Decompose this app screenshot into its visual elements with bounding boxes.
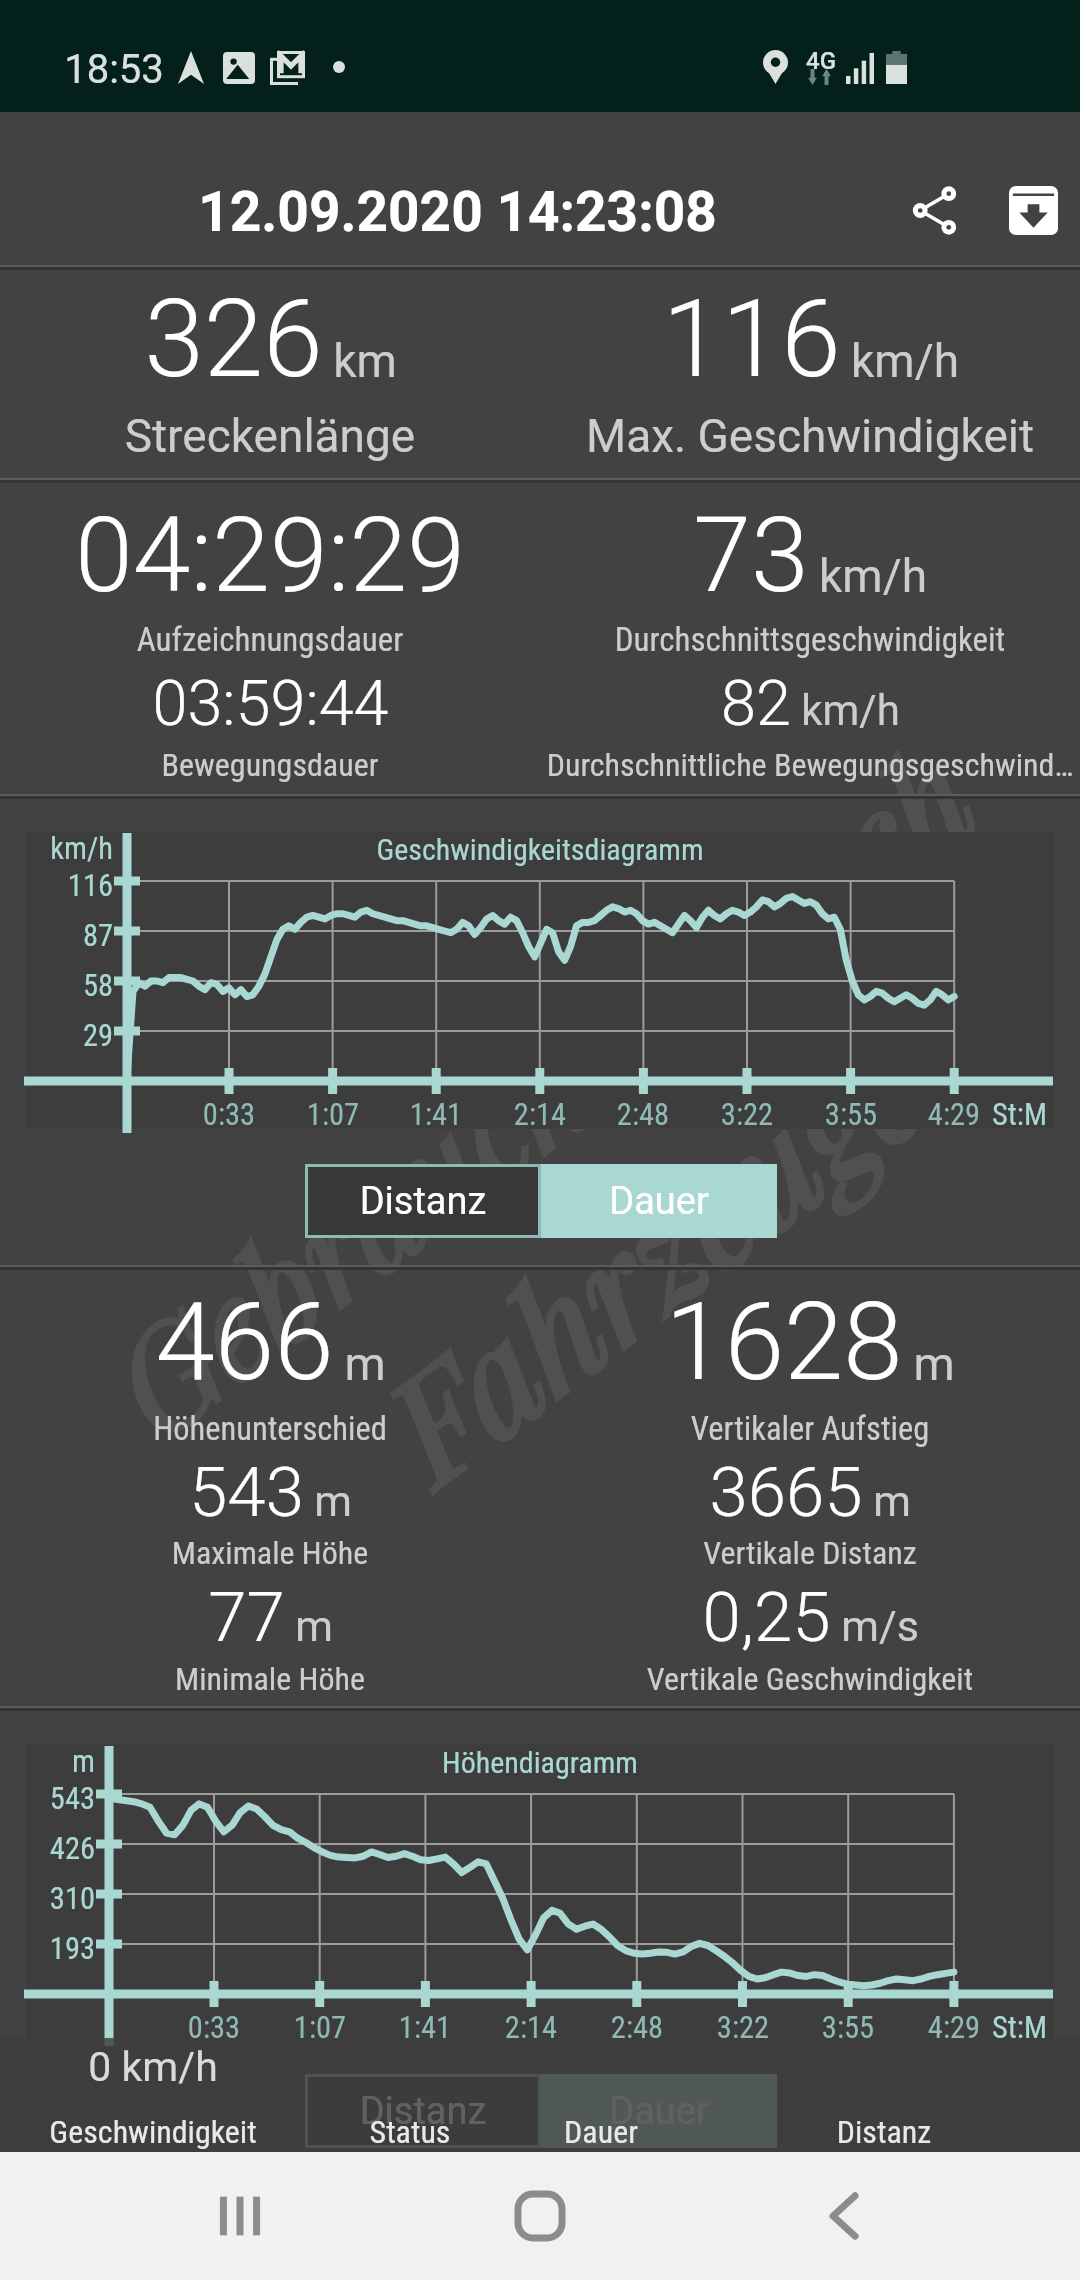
staticText: m xyxy=(295,1601,333,1651)
staticText: Dauer xyxy=(514,2113,688,2151)
staticText: 3:55 xyxy=(788,2010,908,2046)
staticText: 426 xyxy=(0,1831,95,1867)
staticText: Streckenlänge xyxy=(0,409,600,463)
button[interactable]: Herunterladen xyxy=(964,141,1080,279)
button[interactable]: Zurück xyxy=(785,2156,905,2276)
staticText: 04:29:29 xyxy=(75,495,465,617)
button[interactable]: 0 km/h xyxy=(0,2038,306,2152)
staticText: 1:07 xyxy=(273,1097,393,1133)
staticText: 58 xyxy=(0,968,113,1004)
staticText: Vertikaler Aufstieg xyxy=(480,1410,1080,1448)
staticText: 3665 xyxy=(709,1452,863,1533)
button[interactable]: 04:29:29 xyxy=(0,495,540,620)
button[interactable]: 326 xyxy=(0,277,540,405)
staticText: Geschwindigkeitsdiagramm xyxy=(26,832,1054,867)
staticText: Durchschnittliche Bewegungsgeschwind… xyxy=(480,746,1080,784)
staticText: km/h xyxy=(801,686,900,735)
staticText: 116 xyxy=(0,868,113,904)
staticText: St:M xyxy=(992,2010,1047,2046)
staticText: St:M xyxy=(992,1097,1047,1133)
button[interactable]: 116 xyxy=(540,277,1080,405)
button[interactable]: Dauer xyxy=(514,2038,688,2152)
staticText: 3:22 xyxy=(687,1097,807,1133)
staticText: 193 xyxy=(0,1931,95,1967)
button[interactable]: Status xyxy=(306,2038,514,2152)
staticText: 2:14 xyxy=(480,1097,600,1133)
staticText: 543 xyxy=(189,1452,304,1533)
staticText: km xyxy=(333,334,397,388)
staticText: 4:29 xyxy=(894,2010,1014,2046)
button[interactable]: 77 xyxy=(0,1577,540,1660)
button[interactable]: 1628 xyxy=(540,1280,1080,1408)
button[interactable]: 0,25 xyxy=(540,1577,1080,1660)
button[interactable]: Dauer xyxy=(541,1164,777,1238)
staticText: Höhendiagramm xyxy=(26,1745,1054,1780)
staticText: Distanz xyxy=(305,1179,541,1224)
staticText: Höhenunterschied xyxy=(0,1410,600,1448)
staticText: 3:55 xyxy=(791,1097,911,1133)
button[interactable]: Startbildschirm xyxy=(480,2156,600,2276)
staticText: 4G xyxy=(806,47,836,75)
staticText: 0:33 xyxy=(169,1097,289,1133)
staticText: Maximale Höhe xyxy=(0,1534,600,1572)
staticText: 73 xyxy=(693,495,809,617)
staticText: Gebrauchtdeutsche xyxy=(73,689,1027,1471)
staticText: Dauer xyxy=(541,2089,777,2134)
button[interactable]: Distanz xyxy=(305,1164,541,1238)
button[interactable]: 466 xyxy=(0,1280,540,1408)
button[interactable]: 3665 xyxy=(540,1452,1080,1535)
staticText: 0:33 xyxy=(154,2010,274,2046)
staticText: 3:22 xyxy=(683,2010,803,2046)
staticText: m/s xyxy=(841,1601,919,1651)
staticText: m xyxy=(344,1336,386,1391)
staticText: Aufzeichnungsdauer xyxy=(0,620,600,659)
staticText: Vertikale Distanz xyxy=(480,1534,1080,1572)
staticText: 1:41 xyxy=(376,1097,496,1133)
button[interactable]: 82 xyxy=(540,667,1080,743)
button[interactable]: Distanz xyxy=(688,2038,1080,2152)
staticText: 1:07 xyxy=(260,2010,380,2046)
staticText: Status xyxy=(306,2113,514,2151)
staticText: 77 xyxy=(208,1577,285,1658)
staticText: km/h xyxy=(0,831,113,867)
button[interactable]: Dauer xyxy=(541,2074,777,2148)
staticText: km/h xyxy=(851,334,959,388)
button[interactable]: 73 xyxy=(540,495,1080,620)
staticText: 82 xyxy=(721,667,791,741)
staticText: 29 xyxy=(0,1018,113,1054)
staticText: 310 xyxy=(0,1881,95,1917)
staticText: 326 xyxy=(144,277,323,402)
staticText: 87 xyxy=(0,918,113,954)
staticText: Durchschnittsgeschwindigkeit xyxy=(480,620,1080,659)
staticText: m xyxy=(913,1336,955,1391)
staticText: 2:48 xyxy=(583,1097,703,1133)
staticText: 0,25 xyxy=(702,1577,831,1658)
staticText: Geschwindigkeit xyxy=(0,2113,306,2151)
staticText: 0 km/h xyxy=(0,2043,306,2091)
staticText: 2:48 xyxy=(577,2010,697,2046)
staticText: Vertikale Geschwindigkeit xyxy=(480,1660,1080,1698)
button[interactable]: Distanz xyxy=(305,2074,541,2148)
staticText: m xyxy=(0,1744,95,1780)
staticText: 03:59:44 xyxy=(152,667,389,741)
button[interactable]: 543 xyxy=(0,1452,540,1535)
staticText: km/h xyxy=(819,549,927,603)
staticText: Bewegungsdauer xyxy=(0,746,600,784)
staticText: 18:53 xyxy=(64,46,164,93)
button[interactable]: Teilen xyxy=(866,141,1004,279)
button[interactable]: 03:59:44 xyxy=(0,667,540,743)
staticText: 2:14 xyxy=(471,2010,591,2046)
staticText: 1628 xyxy=(665,1280,903,1405)
button[interactable]: Letzte Apps xyxy=(180,2156,300,2276)
button[interactable]: 12.09.2020 14:23:08 xyxy=(0,112,1080,265)
staticText: 543 xyxy=(0,1781,95,1817)
staticText: m xyxy=(314,1476,352,1526)
staticText: Distanz xyxy=(305,2089,541,2134)
staticText: Fahrzeuge xyxy=(343,986,960,1518)
staticText: 4:29 xyxy=(894,1097,1014,1133)
staticText: Dauer xyxy=(541,1179,777,1224)
staticText: Max. Geschwindigkeit xyxy=(480,409,1080,463)
staticText: m xyxy=(873,1476,911,1526)
staticText: 466 xyxy=(155,1280,334,1405)
staticText: 1:41 xyxy=(365,2010,485,2046)
